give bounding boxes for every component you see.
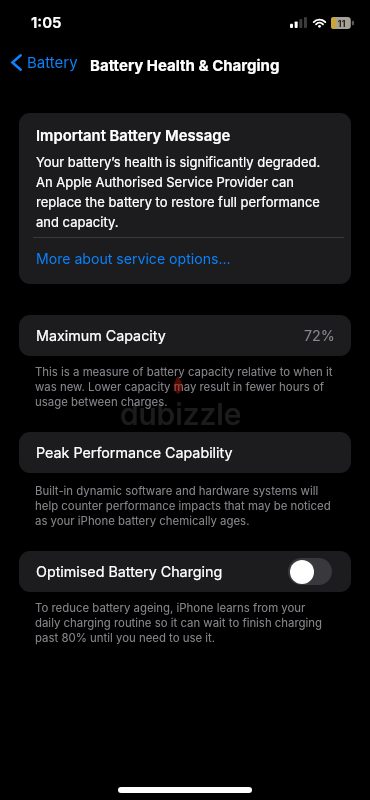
button[interactable]: More about service options... <box>19 238 351 284</box>
staticText: dubizzle <box>120 396 242 432</box>
staticText: Maximum Capacity <box>36 326 166 345</box>
staticText: More about service options... <box>36 250 231 268</box>
button[interactable]: Maximum Capacity <box>19 315 351 356</box>
staticText: 11 <box>337 18 346 29</box>
staticText: To reduce battery ageing, iPhone learns … <box>35 600 333 645</box>
button[interactable]: Peak Performance Capability <box>19 432 351 473</box>
staticText: Important Battery Message <box>36 127 231 145</box>
button[interactable]: Optimised Battery Charging toggle, off <box>288 558 332 585</box>
staticText: 72% <box>304 326 335 345</box>
staticText: This is a measure of battery capacity re… <box>35 364 333 409</box>
staticText: Optimised Battery Charging <box>36 562 223 581</box>
staticText: Peak Performance Capability <box>36 443 233 462</box>
button[interactable]: Battery <box>0 46 84 78</box>
staticText: Your battery’s health is significantly d… <box>36 151 337 231</box>
staticText: Battery <box>27 52 78 72</box>
staticText: Built-in dynamic software and hardware s… <box>35 483 333 528</box>
staticText: 1:05 <box>31 12 62 32</box>
staticText: Battery Health & Charging <box>90 55 280 75</box>
